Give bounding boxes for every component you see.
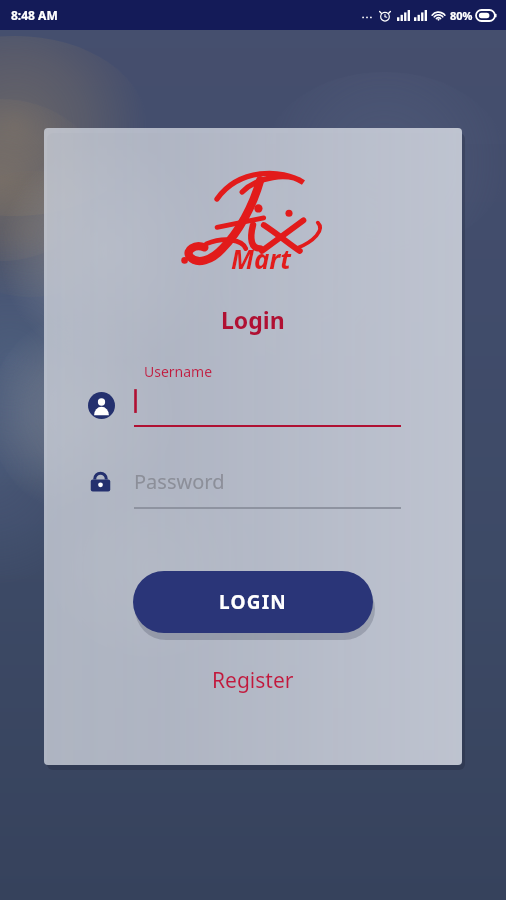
button[interactable]: Register xyxy=(192,662,314,699)
button[interactable]: Username xyxy=(88,362,418,427)
staticText: 80% xyxy=(450,8,473,23)
staticText: Register xyxy=(212,666,294,695)
staticText: Password xyxy=(134,468,225,495)
staticText: Mart xyxy=(231,241,291,276)
staticText: Username xyxy=(144,362,213,381)
staticText: Login xyxy=(221,304,285,335)
button[interactable]: Password xyxy=(88,468,418,509)
other: Password xyxy=(88,469,113,494)
button[interactable]: LOGIN xyxy=(133,571,373,633)
other: Username xyxy=(88,392,115,419)
staticText: LOGIN xyxy=(219,589,287,615)
staticText: 8:48 AM xyxy=(11,7,58,23)
